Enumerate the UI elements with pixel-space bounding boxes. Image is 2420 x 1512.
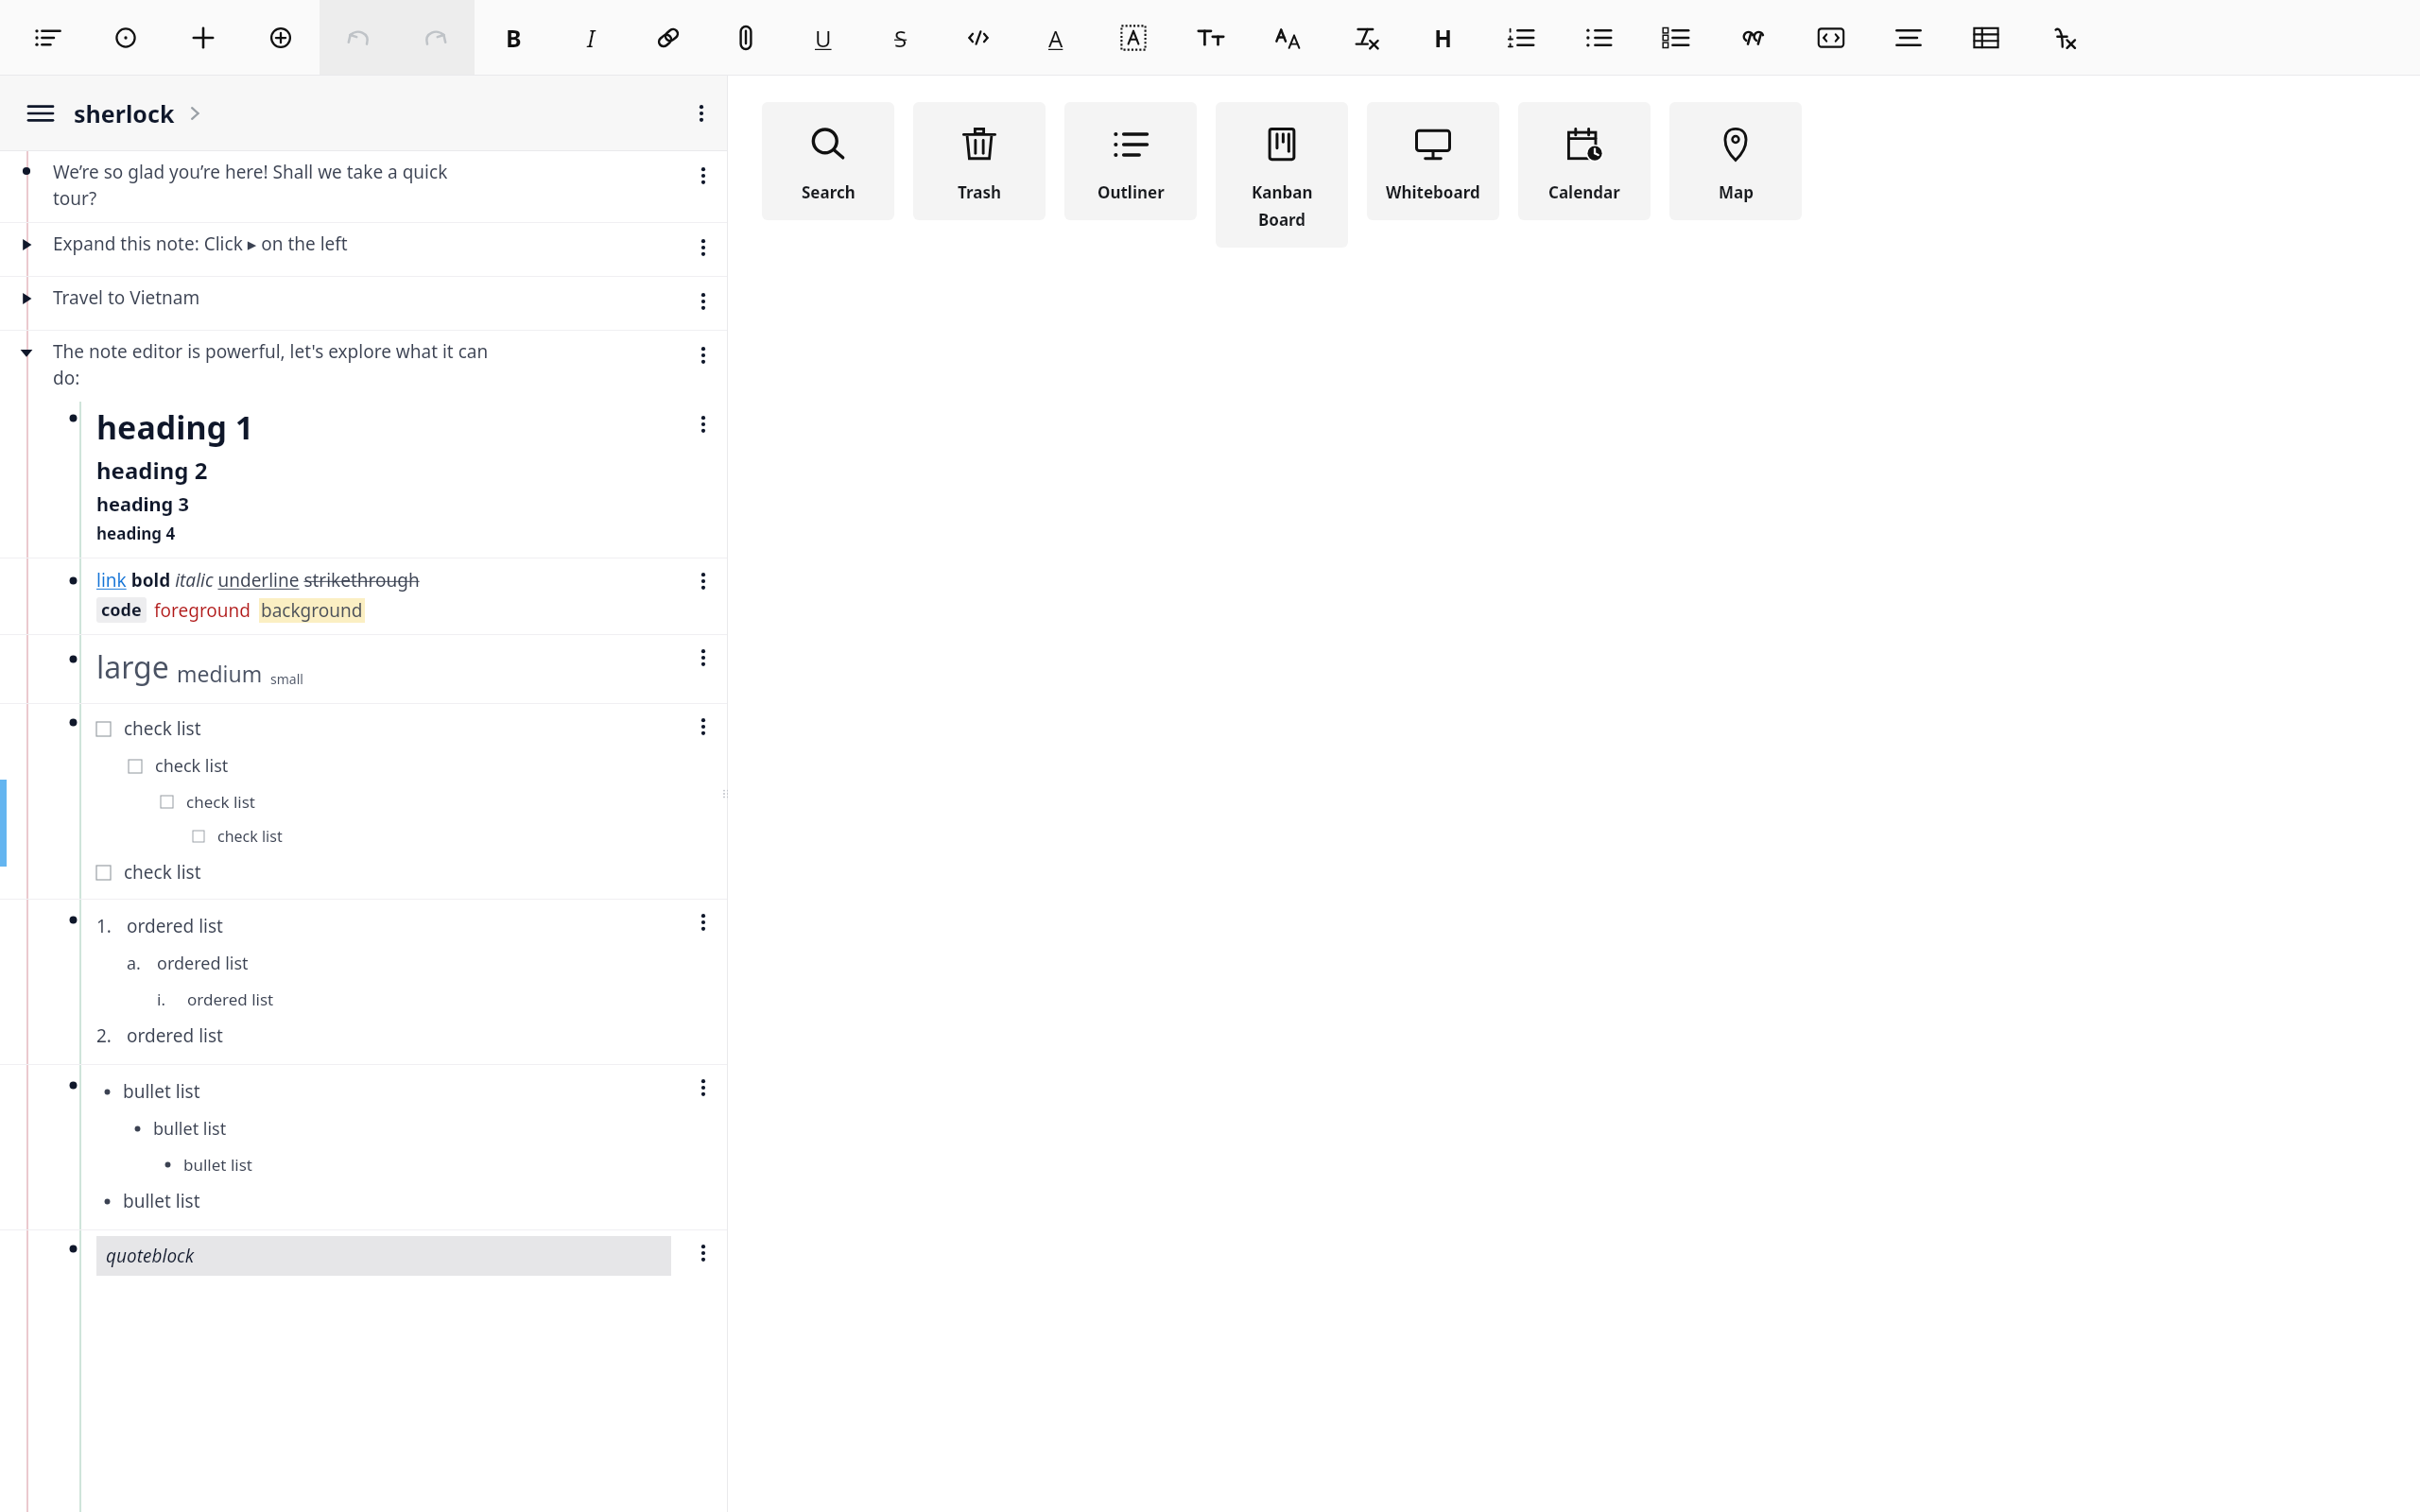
staticText: heading 2	[96, 455, 208, 486]
button[interactable]: More options	[684, 903, 722, 941]
button[interactable]: Expand this note: Click ▸ on the left	[0, 223, 728, 276]
button[interactable]: Kanban Board	[1216, 102, 1348, 248]
button[interactable]: More options	[684, 708, 722, 746]
button[interactable]: Menu	[21, 94, 60, 133]
button[interactable]: Bulleted list	[1560, 0, 1637, 76]
staticText: code	[101, 598, 142, 622]
button[interactable]: Font size	[1172, 0, 1250, 76]
button[interactable]: check list	[96, 860, 671, 885]
button[interactable]: Link	[630, 0, 707, 76]
staticText: 2.	[96, 1023, 112, 1048]
staticText: check list	[155, 754, 229, 778]
button[interactable]: 1.	[96, 914, 671, 938]
button[interactable]: check list	[193, 826, 671, 847]
button[interactable]: More options	[684, 405, 722, 443]
button[interactable]: More options	[684, 562, 722, 600]
staticText: Whiteboard	[1386, 181, 1480, 203]
button[interactable]: Code block	[1792, 0, 1870, 76]
staticText: medium	[177, 659, 263, 688]
button[interactable]: Undo	[320, 0, 397, 76]
button[interactable]: heading 1	[0, 402, 728, 558]
staticText: small	[270, 670, 303, 688]
button[interactable]: Quote	[1715, 0, 1792, 76]
staticText: S	[894, 23, 907, 54]
button[interactable]: Whiteboard	[1367, 102, 1499, 220]
button[interactable]: bullet list	[157, 1154, 671, 1176]
staticText: H	[1434, 22, 1453, 54]
button[interactable]: Insert	[242, 0, 320, 76]
button[interactable]: link bold italic underline strikethrough	[0, 558, 728, 634]
button[interactable]: Highlight	[1095, 0, 1172, 76]
button[interactable]: 1.	[0, 900, 728, 1064]
button[interactable]: More options	[684, 336, 722, 374]
button[interactable]: Table	[1947, 0, 2025, 76]
button[interactable]: Heading	[1405, 0, 1482, 76]
button[interactable]: Outliner	[1064, 102, 1197, 220]
button[interactable]: Record	[87, 0, 164, 76]
button[interactable]: Strikethrough	[862, 0, 940, 76]
button[interactable]: Font family	[1250, 0, 1327, 76]
staticText: heading 4	[96, 523, 176, 544]
button[interactable]: Resize sidebar	[719, 787, 733, 800]
button[interactable]: Trash	[913, 102, 1046, 220]
staticText: background	[261, 598, 363, 623]
button[interactable]: Code	[940, 0, 1017, 76]
button[interactable]: check list	[161, 791, 671, 813]
button[interactable]: Add	[164, 0, 242, 76]
staticText: Expand this note: Click ▸ on the left	[53, 232, 348, 256]
button[interactable]: 2.	[96, 1023, 671, 1048]
button[interactable]: Calendar	[1518, 102, 1651, 220]
button[interactable]: We’re so glad you’re here! Shall we take…	[0, 151, 728, 222]
staticText: 1.	[96, 914, 112, 938]
staticText: link bold italic underline strikethrough	[96, 568, 420, 593]
button[interactable]: Attachment	[707, 0, 785, 76]
staticText: Trash	[958, 181, 1001, 203]
button[interactable]: check list	[96, 716, 671, 741]
button[interactable]: Map	[1669, 102, 1802, 220]
button[interactable]: More options	[684, 229, 722, 266]
button[interactable]: More options	[684, 1069, 722, 1107]
button[interactable]: More options	[684, 157, 722, 195]
staticText: check list	[217, 826, 283, 847]
button[interactable]: Clear formatting	[1327, 0, 1405, 76]
staticText: bullet list	[153, 1117, 227, 1141]
button[interactable]: More options	[683, 94, 720, 132]
button[interactable]: bullet list	[127, 1117, 671, 1141]
button[interactable]: Alignment	[1870, 0, 1947, 76]
button[interactable]: check list	[0, 704, 728, 899]
button[interactable]: large	[0, 635, 728, 703]
button[interactable]: Redo	[397, 0, 475, 76]
staticText: heading 1	[96, 405, 254, 449]
button[interactable]: Numbered list	[1482, 0, 1560, 76]
button[interactable]: Search	[762, 102, 894, 220]
button[interactable]: More options	[684, 283, 722, 320]
button[interactable]: Check list	[1637, 0, 1715, 76]
staticText: quoteblock	[106, 1244, 195, 1268]
button[interactable]: More options	[684, 1234, 722, 1272]
staticText: Travel to Vietnam	[53, 285, 200, 310]
button[interactable]: check list	[129, 754, 671, 778]
staticText: U	[815, 23, 832, 54]
button[interactable]: bullet list	[0, 1065, 728, 1229]
button[interactable]: Travel to Vietnam	[0, 277, 728, 330]
staticText: We’re so glad you’re here! Shall we take…	[53, 160, 448, 210]
button[interactable]: Bold	[475, 0, 552, 76]
button[interactable]: i.	[157, 988, 671, 1010]
button[interactable]: Underline	[785, 0, 862, 76]
button[interactable]: sherlock	[74, 97, 203, 129]
button[interactable]: a.	[127, 952, 671, 975]
button[interactable]: quoteblock	[0, 1230, 728, 1283]
staticText: Map	[1719, 181, 1754, 203]
staticText: foreground	[154, 598, 251, 623]
staticText: I	[587, 22, 596, 54]
staticText: Board	[1258, 209, 1306, 231]
button[interactable]: Italic	[552, 0, 630, 76]
button[interactable]: The note editor is powerful, let's explo…	[0, 331, 728, 402]
button[interactable]: Formula	[2025, 0, 2102, 76]
staticText: check list	[124, 860, 201, 885]
button[interactable]: bullet list	[96, 1189, 671, 1213]
button[interactable]: bullet list	[96, 1079, 671, 1104]
button[interactable]: Text color	[1017, 0, 1095, 76]
button[interactable]: Note properties	[9, 0, 87, 76]
button[interactable]: More options	[684, 639, 722, 677]
